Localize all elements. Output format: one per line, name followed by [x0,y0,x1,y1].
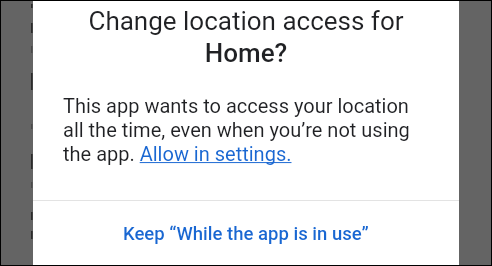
button[interactable]: Keep “While the app is in use” [33,201,459,266]
button[interactable]: Allow in settings [140,142,293,166]
staticText: This app wants to access your location a… [63,94,429,166]
staticText: Change location access for Home? [63,6,429,69]
staticText: Keep “While the app is in use” [123,223,369,245]
